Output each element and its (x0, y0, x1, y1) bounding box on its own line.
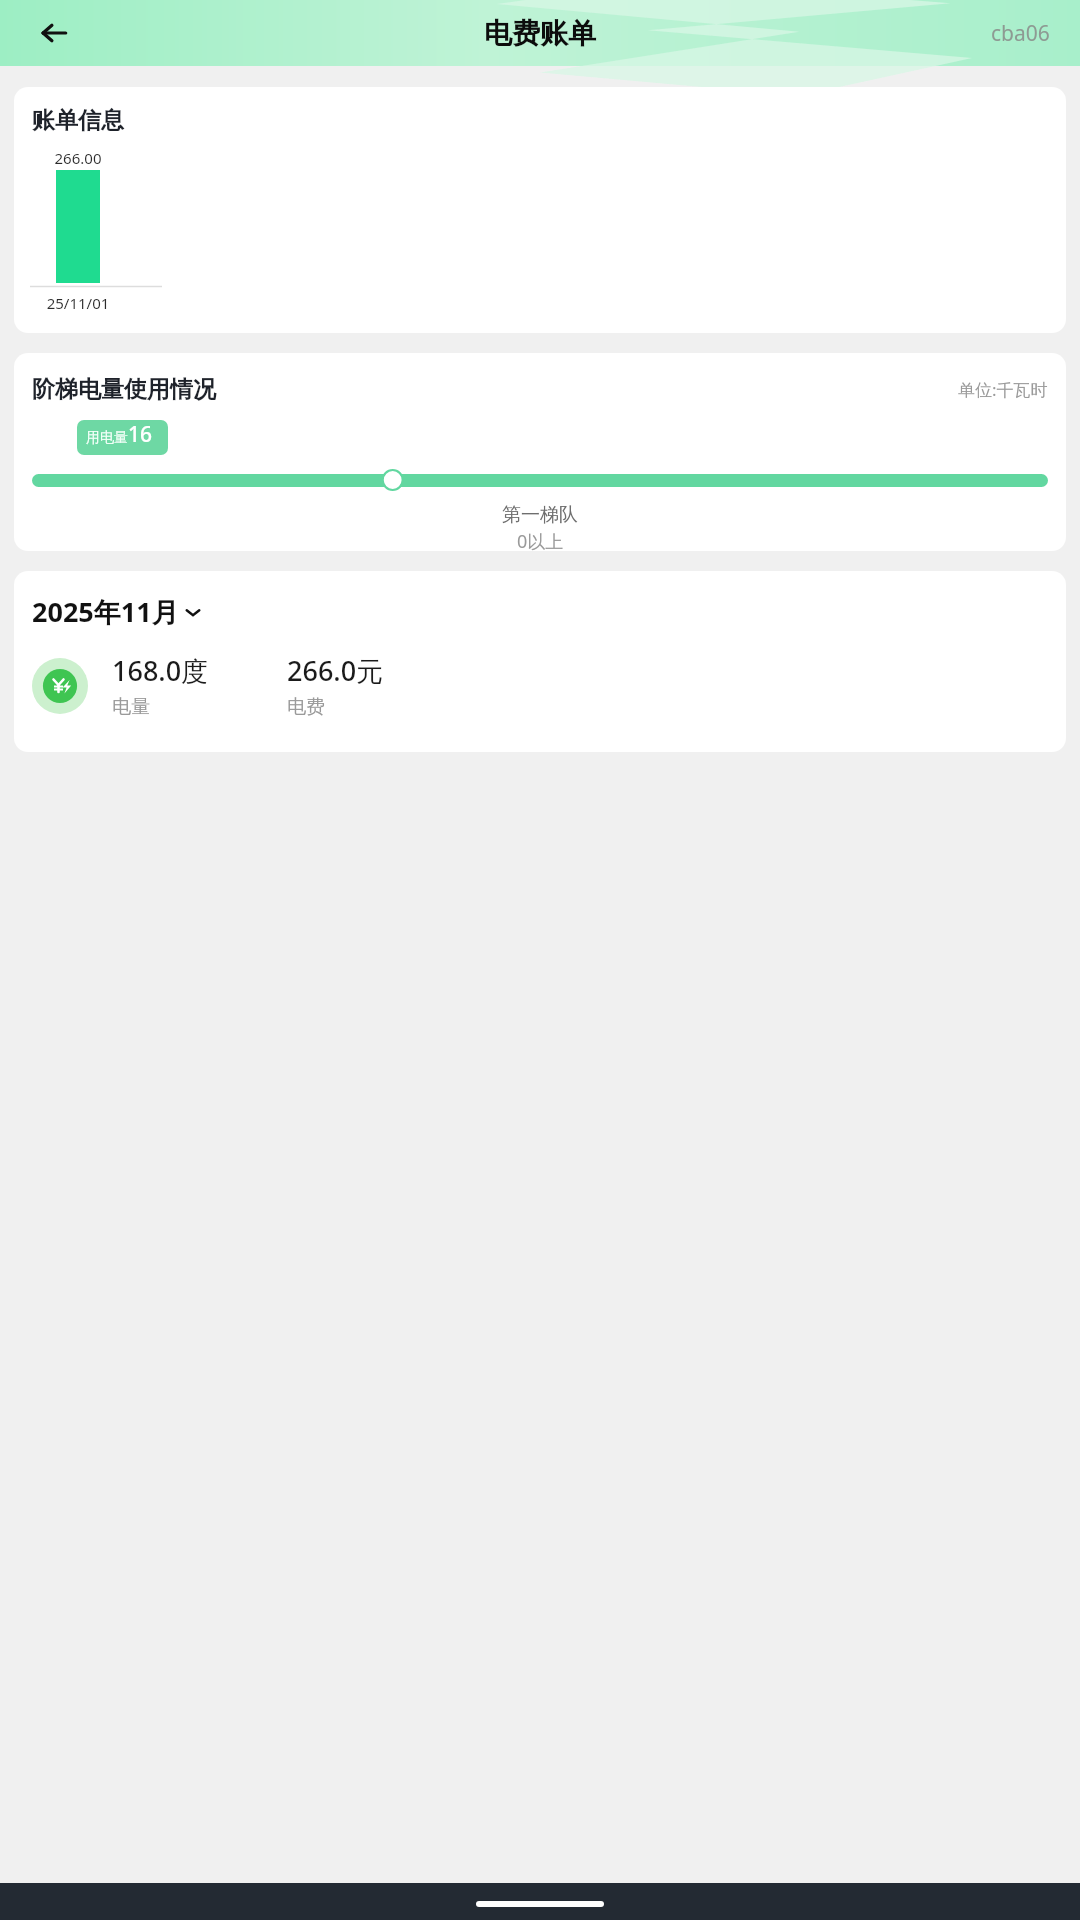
staticText: 2025年11月 (32, 593, 179, 630)
staticText: 账单信息 (32, 106, 124, 135)
staticText: 电费 (287, 695, 325, 719)
staticText: 266.0元 (287, 652, 384, 689)
staticText: 第一梯队 (502, 503, 578, 527)
staticText: 25/11/01 (38, 293, 118, 313)
staticText: 单位:千瓦时 (958, 378, 1048, 401)
button[interactable]: Back (28, 7, 80, 59)
staticText: 电量 (112, 695, 150, 719)
staticText: 阶梯电量使用情况 (32, 375, 216, 404)
button[interactable] (32, 474, 1048, 487)
staticText: 电费账单 (484, 16, 596, 51)
staticText: 168.0 (128, 420, 159, 455)
button[interactable]: 2025年11月 (32, 593, 202, 630)
staticText: 用电量 (86, 429, 128, 447)
staticText: 266.00 (38, 148, 118, 168)
staticText: 168.0度 (112, 652, 209, 689)
button[interactable]: 用电量 (77, 420, 168, 455)
staticText: cba06 (991, 19, 1050, 48)
staticText: 0以上 (517, 529, 564, 551)
